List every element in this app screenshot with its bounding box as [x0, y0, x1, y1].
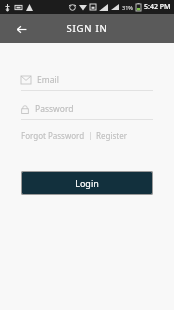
staticText: Register: [96, 130, 128, 141]
button[interactable]: Email: [21, 73, 153, 91]
staticText: Password: [35, 103, 74, 115]
staticText: 31%: [122, 4, 133, 11]
button[interactable]: Register: [96, 128, 128, 143]
staticText: SIGN IN: [66, 22, 108, 35]
staticText: Forgot Password: [21, 130, 85, 141]
staticText: 5:42 PM: [144, 2, 171, 12]
button[interactable]: Back: [11, 19, 31, 39]
staticText: Login: [75, 177, 99, 189]
staticText: Email: [37, 74, 59, 86]
button[interactable]: Forgot Password: [21, 128, 85, 143]
button[interactable]: Login: [22, 172, 152, 194]
button[interactable]: Password: [21, 102, 153, 120]
